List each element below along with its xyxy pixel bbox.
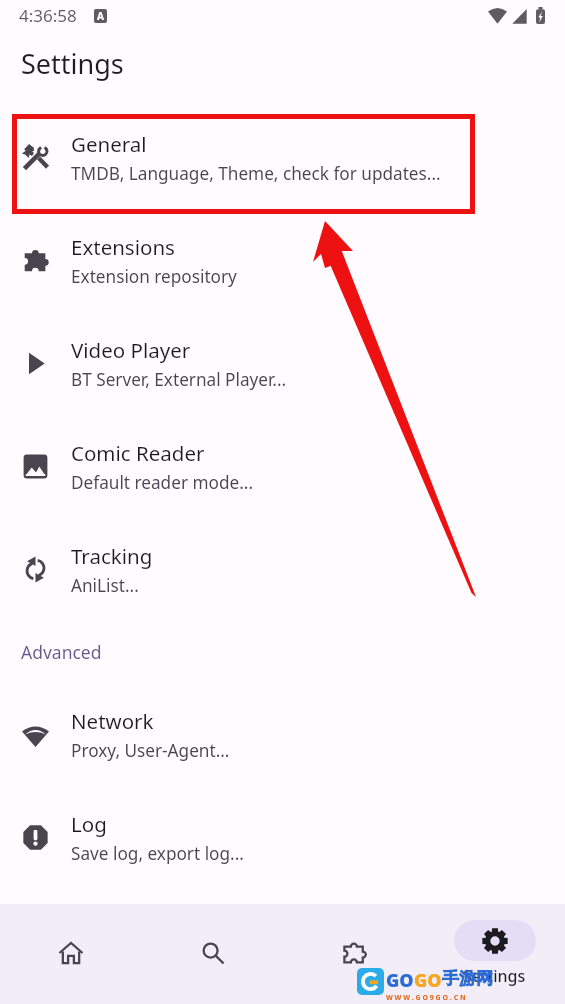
button[interactable]: Network bbox=[0, 683, 565, 786]
other: Home bbox=[59, 941, 83, 965]
other: Search bbox=[201, 941, 225, 965]
staticText: Save log, export log... bbox=[71, 842, 244, 865]
staticText: W W W . G O 9 G O . C N bbox=[386, 993, 466, 1003]
staticText: Network bbox=[71, 707, 154, 735]
staticText: Default reader mode... bbox=[71, 471, 253, 494]
staticText: BT Server, External Player... bbox=[71, 368, 287, 391]
staticText: Video Player bbox=[71, 336, 191, 364]
button[interactable]: Settings bbox=[424, 904, 565, 987]
staticText: GO bbox=[386, 968, 414, 993]
staticText: Comic Reader bbox=[71, 439, 205, 467]
staticText: Settings bbox=[463, 965, 526, 987]
staticText: General bbox=[71, 130, 147, 158]
staticText: GO bbox=[414, 968, 442, 993]
button[interactable]: Search bbox=[142, 904, 283, 965]
button[interactable]: Video Player bbox=[0, 312, 565, 415]
staticText: 4:36:58 bbox=[19, 4, 77, 27]
staticText: TMDB, Language, Theme, check for updates… bbox=[71, 162, 441, 185]
button[interactable]: General bbox=[0, 106, 565, 209]
staticText: Log bbox=[71, 810, 107, 838]
button[interactable]: Log bbox=[0, 786, 565, 889]
staticText: Tracking bbox=[71, 542, 153, 570]
staticText: Proxy, User-Agent... bbox=[71, 739, 230, 762]
staticText: Extension repository bbox=[71, 265, 237, 288]
staticText: AniList... bbox=[71, 574, 139, 597]
button[interactable]: Extensions bbox=[283, 904, 424, 965]
other: Extensions bbox=[342, 941, 366, 965]
staticText: Settings bbox=[21, 45, 124, 82]
staticText: 手游网 bbox=[442, 968, 493, 989]
staticText: Advanced bbox=[21, 640, 102, 664]
other: Settings bbox=[482, 928, 508, 954]
staticText: A bbox=[97, 9, 104, 23]
button[interactable]: Home bbox=[0, 904, 142, 965]
button[interactable]: Tracking bbox=[0, 518, 565, 621]
staticText: Extensions bbox=[71, 233, 175, 261]
button[interactable]: Extensions bbox=[0, 209, 565, 312]
button[interactable]: Comic Reader bbox=[0, 415, 565, 518]
